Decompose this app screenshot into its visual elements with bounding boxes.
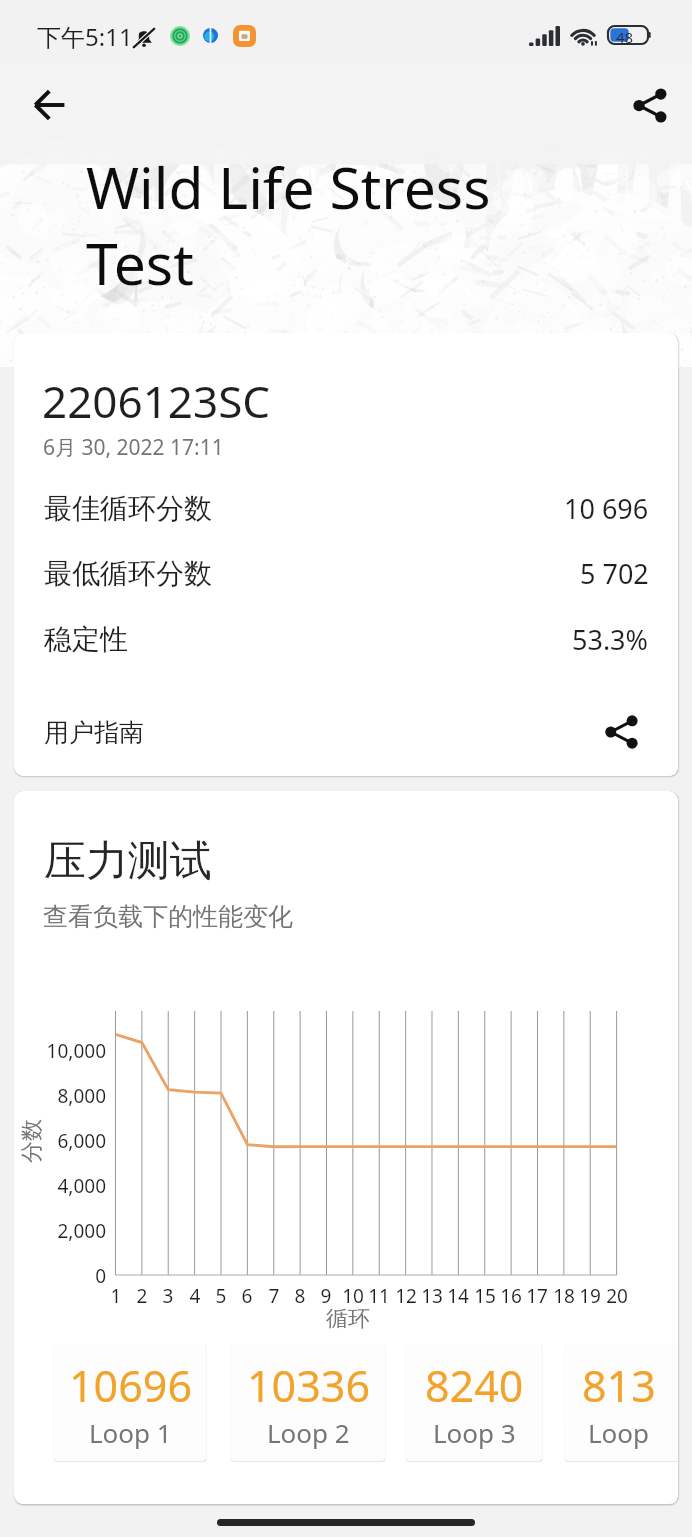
staticText: 18: [544, 1283, 584, 1309]
staticText: 4,000: [14, 1173, 106, 1199]
button[interactable]: Back: [26, 81, 74, 129]
staticText: 17: [517, 1283, 557, 1309]
staticText: 10 696: [564, 490, 649, 527]
staticText: 6,000: [14, 1128, 106, 1154]
button[interactable]: 813: [565, 1344, 678, 1461]
staticText: 14: [438, 1283, 478, 1309]
staticText: Wild Life Stress Test: [86, 148, 526, 302]
staticText: Loop: [588, 1415, 650, 1450]
staticText: 最佳循环分数: [44, 491, 212, 526]
staticText: 6月 30, 2022 17:11: [43, 433, 224, 462]
staticText: 7: [254, 1283, 294, 1309]
button[interactable]: 10696: [54, 1344, 206, 1461]
staticText: 稳定性: [44, 622, 128, 657]
staticText: Loop 2: [267, 1415, 350, 1450]
staticText: 查看负载下的性能变化: [43, 901, 293, 932]
staticText: 用户指南: [44, 717, 144, 748]
staticText: 13: [412, 1283, 452, 1309]
staticText: 分数: [18, 1119, 46, 1163]
staticText: 8: [280, 1283, 320, 1309]
staticText: 9: [306, 1283, 346, 1309]
staticText: 最低循环分数: [44, 556, 212, 591]
staticText: 2,000: [14, 1218, 106, 1244]
staticText: 20: [597, 1283, 637, 1309]
button[interactable]: Share: [620, 81, 668, 129]
staticText: 3: [148, 1283, 188, 1309]
staticText: 813: [582, 1356, 656, 1415]
staticText: 2206123SC: [42, 371, 271, 431]
staticText: 0: [14, 1263, 106, 1289]
staticText: 下午5:11: [37, 20, 133, 53]
staticText: 11: [359, 1283, 399, 1309]
staticText: 6: [227, 1283, 267, 1309]
staticText: Loop 3: [433, 1415, 516, 1450]
staticText: 4: [175, 1283, 215, 1309]
staticText: 10,000: [14, 1038, 106, 1064]
staticText: 15: [465, 1283, 505, 1309]
staticText: 19: [570, 1283, 610, 1309]
staticText: 8240: [425, 1356, 524, 1415]
button[interactable]: 用户指南: [44, 693, 649, 771]
staticText: 压力测试: [44, 835, 212, 888]
staticText: 循环: [16, 1305, 678, 1333]
staticText: 1: [96, 1283, 136, 1309]
staticText: 10: [333, 1283, 373, 1309]
staticText: 10336: [247, 1356, 370, 1415]
staticText: 5 702: [580, 555, 649, 592]
staticText: 8,000: [14, 1083, 106, 1109]
staticText: 12: [386, 1283, 426, 1309]
button[interactable]: 8240: [406, 1344, 542, 1461]
staticText: 16: [491, 1283, 531, 1309]
staticText: 5: [201, 1283, 241, 1309]
staticText: 10696: [69, 1356, 192, 1415]
button[interactable]: 10336: [231, 1344, 385, 1461]
staticText: 53.3%: [572, 621, 649, 658]
staticText: Loop 1: [89, 1415, 172, 1450]
staticText: 48: [616, 27, 634, 47]
staticText: 2: [122, 1283, 162, 1309]
